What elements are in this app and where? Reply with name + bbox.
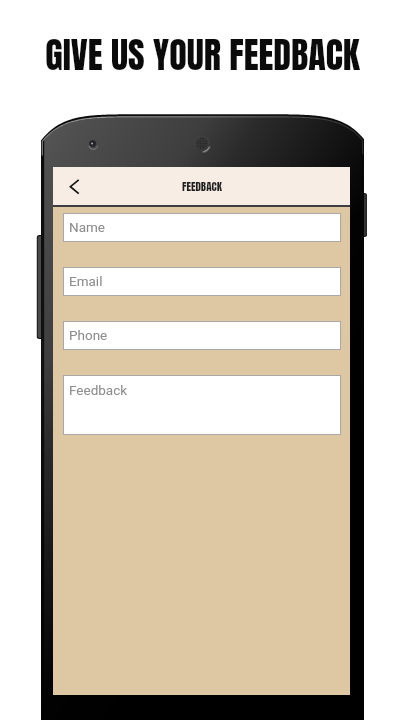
button[interactable]: Feedback: [63, 375, 341, 435]
button[interactable]: Phone: [63, 321, 341, 350]
staticText: Phone: [69, 327, 108, 343]
button[interactable]: Back: [53, 167, 91, 205]
button[interactable]: Email: [63, 267, 341, 296]
staticText: Name: [69, 219, 105, 235]
staticText: FEEDBACK: [182, 178, 222, 195]
staticText: GIVE US YOUR FEEDBACK: [45, 28, 360, 82]
button[interactable]: Name: [63, 213, 341, 242]
staticText: Feedback: [69, 382, 128, 398]
staticText: Email: [69, 273, 103, 289]
